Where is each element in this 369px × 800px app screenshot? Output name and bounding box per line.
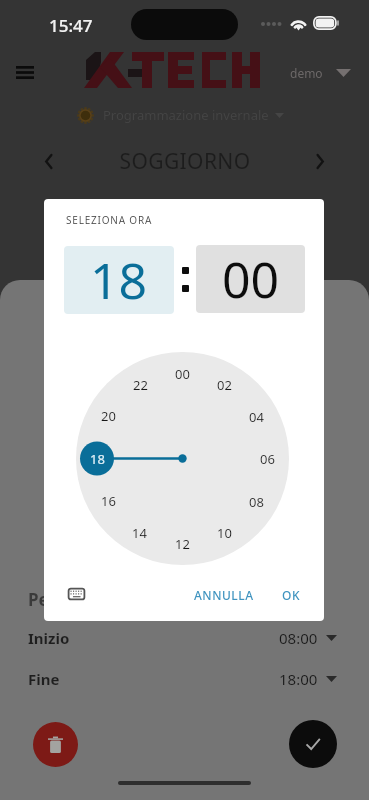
staticText: Inizio	[28, 628, 70, 648]
staticText: 12	[175, 535, 190, 553]
button[interactable]: Menu	[7, 54, 43, 90]
button[interactable]: ANNULLA	[187, 580, 261, 610]
staticText: 14	[132, 524, 147, 542]
button[interactable]: Switch to keyboard input	[61, 579, 91, 609]
staticText: OK	[282, 587, 300, 603]
staticText: ANNULLA	[194, 587, 254, 603]
staticText: 15:47	[49, 14, 93, 37]
staticText: Fine	[28, 669, 60, 689]
button[interactable]: Previous room	[34, 146, 64, 176]
button[interactable]: Fine	[0, 668, 369, 690]
staticText: 18:00	[279, 669, 318, 689]
staticText: 08:00	[279, 628, 318, 648]
button[interactable]: 00	[196, 245, 305, 313]
staticText: 18	[90, 450, 105, 468]
staticText: 00	[175, 365, 190, 383]
button[interactable]: demo	[290, 60, 351, 86]
staticText: 10	[217, 524, 232, 542]
staticText: 18	[90, 246, 148, 314]
staticText: 16	[101, 492, 116, 510]
button[interactable]: Inizio	[0, 627, 369, 649]
button[interactable]: Delete	[33, 722, 78, 767]
button[interactable]: Next room	[305, 146, 335, 176]
staticText: demo	[290, 65, 323, 81]
staticText: Periodo	[28, 588, 94, 611]
staticText: 20	[101, 407, 116, 425]
staticText: SOGGIORNO	[119, 147, 251, 176]
staticText: 06	[260, 450, 275, 468]
button[interactable]: Confirm	[289, 720, 337, 768]
button[interactable]: Programmazione invernale	[77, 104, 284, 126]
button[interactable]: OK	[275, 580, 307, 610]
staticText: 22	[133, 376, 148, 394]
button[interactable]: 18	[64, 246, 174, 314]
staticText: 00	[222, 245, 280, 313]
staticText: Programmazione invernale	[103, 106, 269, 124]
staticText: SELEZIONA ORA	[66, 213, 153, 227]
staticText: 04	[249, 408, 264, 426]
staticText: 08	[249, 493, 264, 511]
staticText: 02	[217, 376, 232, 394]
